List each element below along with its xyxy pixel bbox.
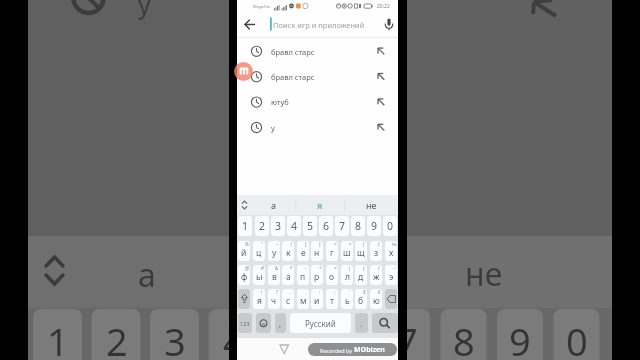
button[interactable]: 8 (351, 216, 365, 236)
button[interactable]: ш (341, 241, 353, 261)
staticText: ц (256, 247, 262, 259)
button[interactable]: т (326, 289, 338, 309)
button[interactable]: у (237, 115, 398, 140)
staticText: ( (349, 265, 351, 271)
button[interactable]: о (326, 265, 338, 285)
staticText: @ (245, 265, 250, 271)
button[interactable]: 4 (287, 216, 301, 236)
button[interactable]: . (355, 313, 368, 333)
staticText: с (286, 295, 291, 307)
button[interactable]: Русский (290, 313, 351, 333)
staticText: 123 (240, 320, 250, 327)
button[interactable]: е (297, 241, 309, 261)
button[interactable]: п (297, 265, 309, 285)
button[interactable]: н (311, 241, 323, 261)
button[interactable]: с (282, 289, 294, 309)
staticText: ) (363, 265, 365, 271)
button[interactable]: м (297, 289, 309, 309)
staticText: 4 (223, 315, 229, 360)
staticText: ш (343, 247, 351, 259)
button[interactable]: э (385, 265, 397, 285)
staticText: бравл старс (271, 47, 315, 57)
button[interactable]: 3 (271, 216, 285, 236)
staticText: п (300, 271, 306, 283)
button[interactable]: и (311, 289, 323, 309)
button[interactable]: в (268, 265, 280, 285)
staticText: < (334, 241, 337, 247)
button[interactable] (372, 313, 398, 333)
button[interactable]: щ (355, 241, 367, 261)
button[interactable]: 6 (319, 216, 333, 236)
staticText: 7 (407, 315, 418, 360)
button[interactable]: ы (253, 265, 265, 285)
button[interactable]: 5 (303, 216, 317, 236)
button[interactable]: р (311, 265, 323, 285)
staticText: ? (276, 289, 278, 295)
staticText: 6 (323, 219, 330, 233)
button[interactable]: б (355, 289, 367, 309)
button[interactable]: л (341, 265, 353, 285)
button[interactable]: не (345, 195, 398, 215)
staticText: 8 (453, 315, 475, 360)
staticText: [ (305, 241, 307, 247)
staticText: р (314, 271, 320, 283)
staticText: > (349, 241, 352, 247)
staticText: ~ (393, 265, 396, 271)
staticText: . (360, 318, 363, 329)
button[interactable]: а (282, 265, 294, 285)
button[interactable]: я (296, 195, 344, 215)
button[interactable]: ю (370, 289, 382, 309)
button[interactable]: у (268, 241, 280, 261)
staticText: * (290, 265, 293, 271)
staticText: 5 (307, 219, 314, 233)
button[interactable]: ь (341, 289, 353, 309)
staticText: 0 (387, 219, 394, 233)
button[interactable] (237, 195, 253, 215)
button[interactable]: 1 (238, 216, 252, 236)
button[interactable] (275, 340, 293, 358)
button[interactable]: бравл старс (237, 39, 398, 64)
staticText: / (378, 265, 380, 271)
button[interactable]: г (326, 241, 338, 261)
staticText: | (290, 241, 293, 247)
button[interactable]: а (253, 195, 295, 215)
button[interactable]: ж (370, 265, 382, 285)
staticText: х (389, 247, 394, 259)
staticText: щ (357, 247, 365, 259)
button[interactable]: ч (268, 289, 280, 309)
button[interactable]: ютуб (237, 89, 398, 114)
button[interactable]: 2 (255, 216, 269, 236)
button[interactable] (385, 289, 397, 309)
button[interactable]: й (238, 241, 250, 261)
staticText: и (314, 295, 320, 307)
staticText: . (305, 289, 307, 295)
button[interactable]: к (282, 241, 294, 261)
staticText: о (329, 271, 335, 283)
button[interactable]: бравл старс (237, 64, 398, 89)
button[interactable]: з (370, 241, 382, 261)
button[interactable]: , (275, 313, 286, 333)
button[interactable] (234, 62, 253, 81)
staticText: бравл старс (271, 72, 315, 82)
button[interactable]: я (253, 289, 265, 309)
staticText: в (272, 271, 277, 283)
staticText: ; (334, 289, 336, 295)
button[interactable] (256, 313, 271, 333)
staticText: э (389, 271, 394, 283)
staticText: : (319, 289, 321, 295)
button[interactable]: 9 (367, 216, 381, 236)
button[interactable] (241, 16, 259, 33)
staticText: ч (271, 295, 277, 307)
button[interactable]: д (355, 265, 367, 285)
button[interactable]: 0 (383, 216, 397, 236)
button[interactable]: ц (253, 241, 265, 261)
button[interactable]: х (385, 241, 397, 261)
button[interactable]: 7 (335, 216, 349, 236)
button[interactable]: ф (238, 265, 250, 285)
button[interactable]: 123 (238, 313, 252, 333)
staticText: № (392, 241, 397, 247)
button[interactable] (238, 289, 250, 309)
staticText: 20:22 (377, 3, 390, 10)
staticText: м (300, 295, 307, 307)
button[interactable] (381, 16, 398, 33)
